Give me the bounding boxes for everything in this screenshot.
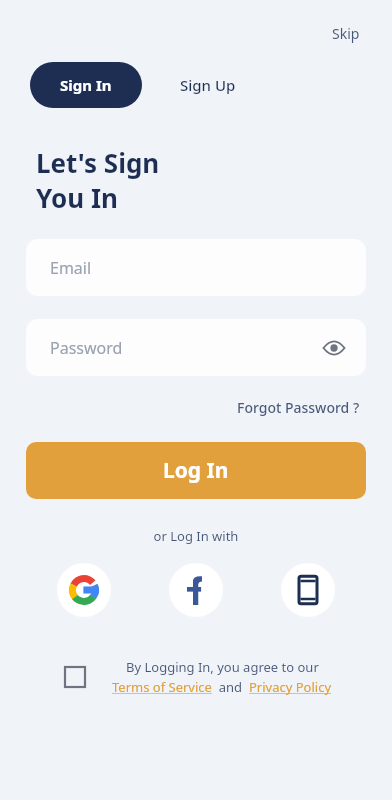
button[interactable]: Forgot Password ? <box>233 396 364 419</box>
staticText: Email <box>50 257 92 279</box>
staticText: Skip <box>332 24 360 43</box>
staticText: or Log In with <box>0 527 392 545</box>
button[interactable]: Password <box>26 319 366 376</box>
button[interactable]: Privacy Policy <box>249 678 332 696</box>
staticText: Let's Sign <box>36 145 160 180</box>
button[interactable]: Log In <box>26 442 366 499</box>
staticText: Terms of Service <box>112 678 212 696</box>
button[interactable]: Sign Up <box>170 62 246 108</box>
staticText: Privacy Policy <box>249 678 332 696</box>
button[interactable]: Show password <box>316 330 352 366</box>
staticText: and <box>212 678 249 696</box>
staticText: By Logging In, you agree to our <box>126 658 319 676</box>
staticText: Sign In <box>60 75 112 95</box>
staticText: Log In <box>163 456 229 485</box>
staticText: You In <box>36 180 118 215</box>
button[interactable]: Agree to terms <box>60 662 90 692</box>
staticText: Sign Up <box>180 75 236 95</box>
button[interactable]: Email <box>26 239 366 296</box>
button[interactable]: Sign in with phone number <box>281 563 335 617</box>
button[interactable]: Sign In <box>30 62 142 108</box>
button[interactable]: Sign in with Facebook <box>169 563 223 617</box>
staticText: Forgot Password ? <box>237 398 360 417</box>
button[interactable]: Terms of Service <box>112 678 212 696</box>
button[interactable]: Skip <box>328 22 364 45</box>
staticText: Password <box>50 337 123 359</box>
button[interactable]: Sign in with Google <box>57 563 111 617</box>
